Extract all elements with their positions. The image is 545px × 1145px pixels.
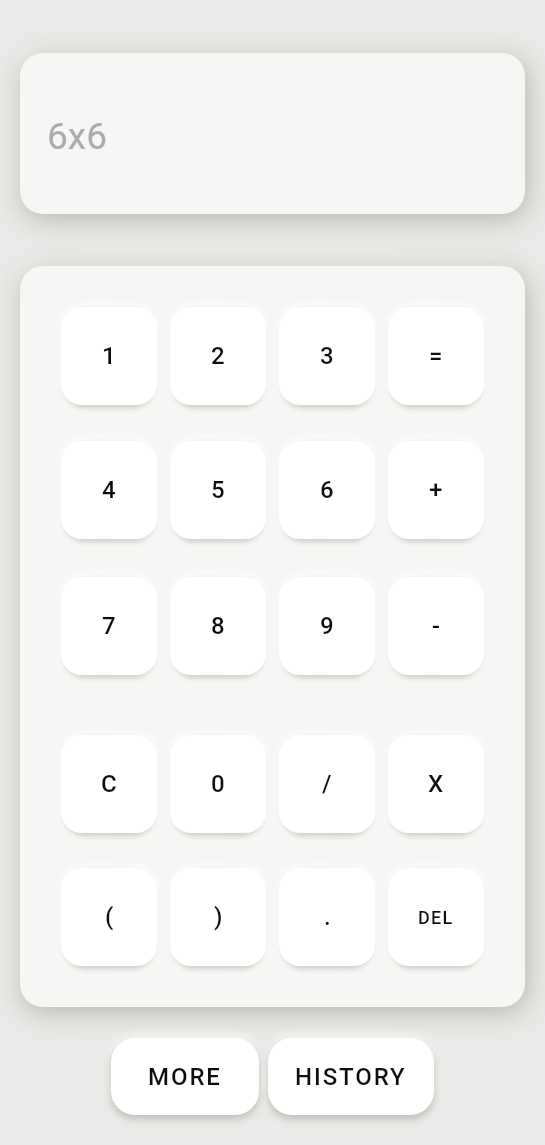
button[interactable]: 2 bbox=[170, 307, 266, 405]
staticText: C bbox=[101, 770, 117, 798]
staticText: 3 bbox=[320, 342, 334, 370]
staticText: 5 bbox=[211, 476, 225, 504]
staticText: ( bbox=[105, 903, 114, 931]
staticText: + bbox=[429, 476, 443, 504]
staticText: 6x6 bbox=[47, 115, 107, 158]
staticText: 8 bbox=[211, 612, 225, 640]
button[interactable]: / bbox=[279, 735, 375, 833]
button[interactable]: + bbox=[388, 441, 484, 539]
button[interactable]: 1 bbox=[61, 307, 157, 405]
staticText: 4 bbox=[102, 476, 116, 504]
button[interactable]: 5 bbox=[170, 441, 266, 539]
staticText: 0 bbox=[211, 770, 225, 798]
button[interactable]: = bbox=[388, 307, 484, 405]
button[interactable]: 9 bbox=[279, 577, 375, 675]
button[interactable]: 4 bbox=[61, 441, 157, 539]
button[interactable]: X bbox=[388, 735, 484, 833]
button[interactable]: - bbox=[388, 577, 484, 675]
button[interactable]: . bbox=[279, 868, 375, 966]
staticText: / bbox=[322, 770, 332, 798]
button[interactable]: 8 bbox=[170, 577, 266, 675]
button[interactable]: ( bbox=[61, 868, 157, 966]
staticText: ) bbox=[214, 903, 223, 931]
staticText: X bbox=[428, 770, 444, 798]
staticText: - bbox=[432, 612, 440, 640]
button[interactable]: ) bbox=[170, 868, 266, 966]
button[interactable]: 6 bbox=[279, 441, 375, 539]
button[interactable]: 3 bbox=[279, 307, 375, 405]
staticText: HISTORY bbox=[295, 1063, 407, 1091]
staticText: 7 bbox=[102, 612, 116, 640]
button[interactable]: C bbox=[61, 735, 157, 833]
staticText: = bbox=[429, 342, 443, 370]
button[interactable]: 6x6 bbox=[20, 53, 525, 214]
button[interactable]: HISTORY bbox=[268, 1038, 434, 1115]
staticText: MORE bbox=[148, 1063, 222, 1091]
button[interactable]: 7 bbox=[61, 577, 157, 675]
staticText: 9 bbox=[320, 612, 334, 640]
button[interactable]: MORE bbox=[111, 1038, 259, 1115]
staticText: . bbox=[324, 903, 331, 931]
staticText: 2 bbox=[211, 342, 225, 370]
staticText: 6 bbox=[320, 476, 334, 504]
button[interactable]: 0 bbox=[170, 735, 266, 833]
staticText: DEL bbox=[418, 907, 454, 928]
staticText: 1 bbox=[102, 342, 116, 370]
button[interactable]: DEL bbox=[388, 868, 484, 966]
